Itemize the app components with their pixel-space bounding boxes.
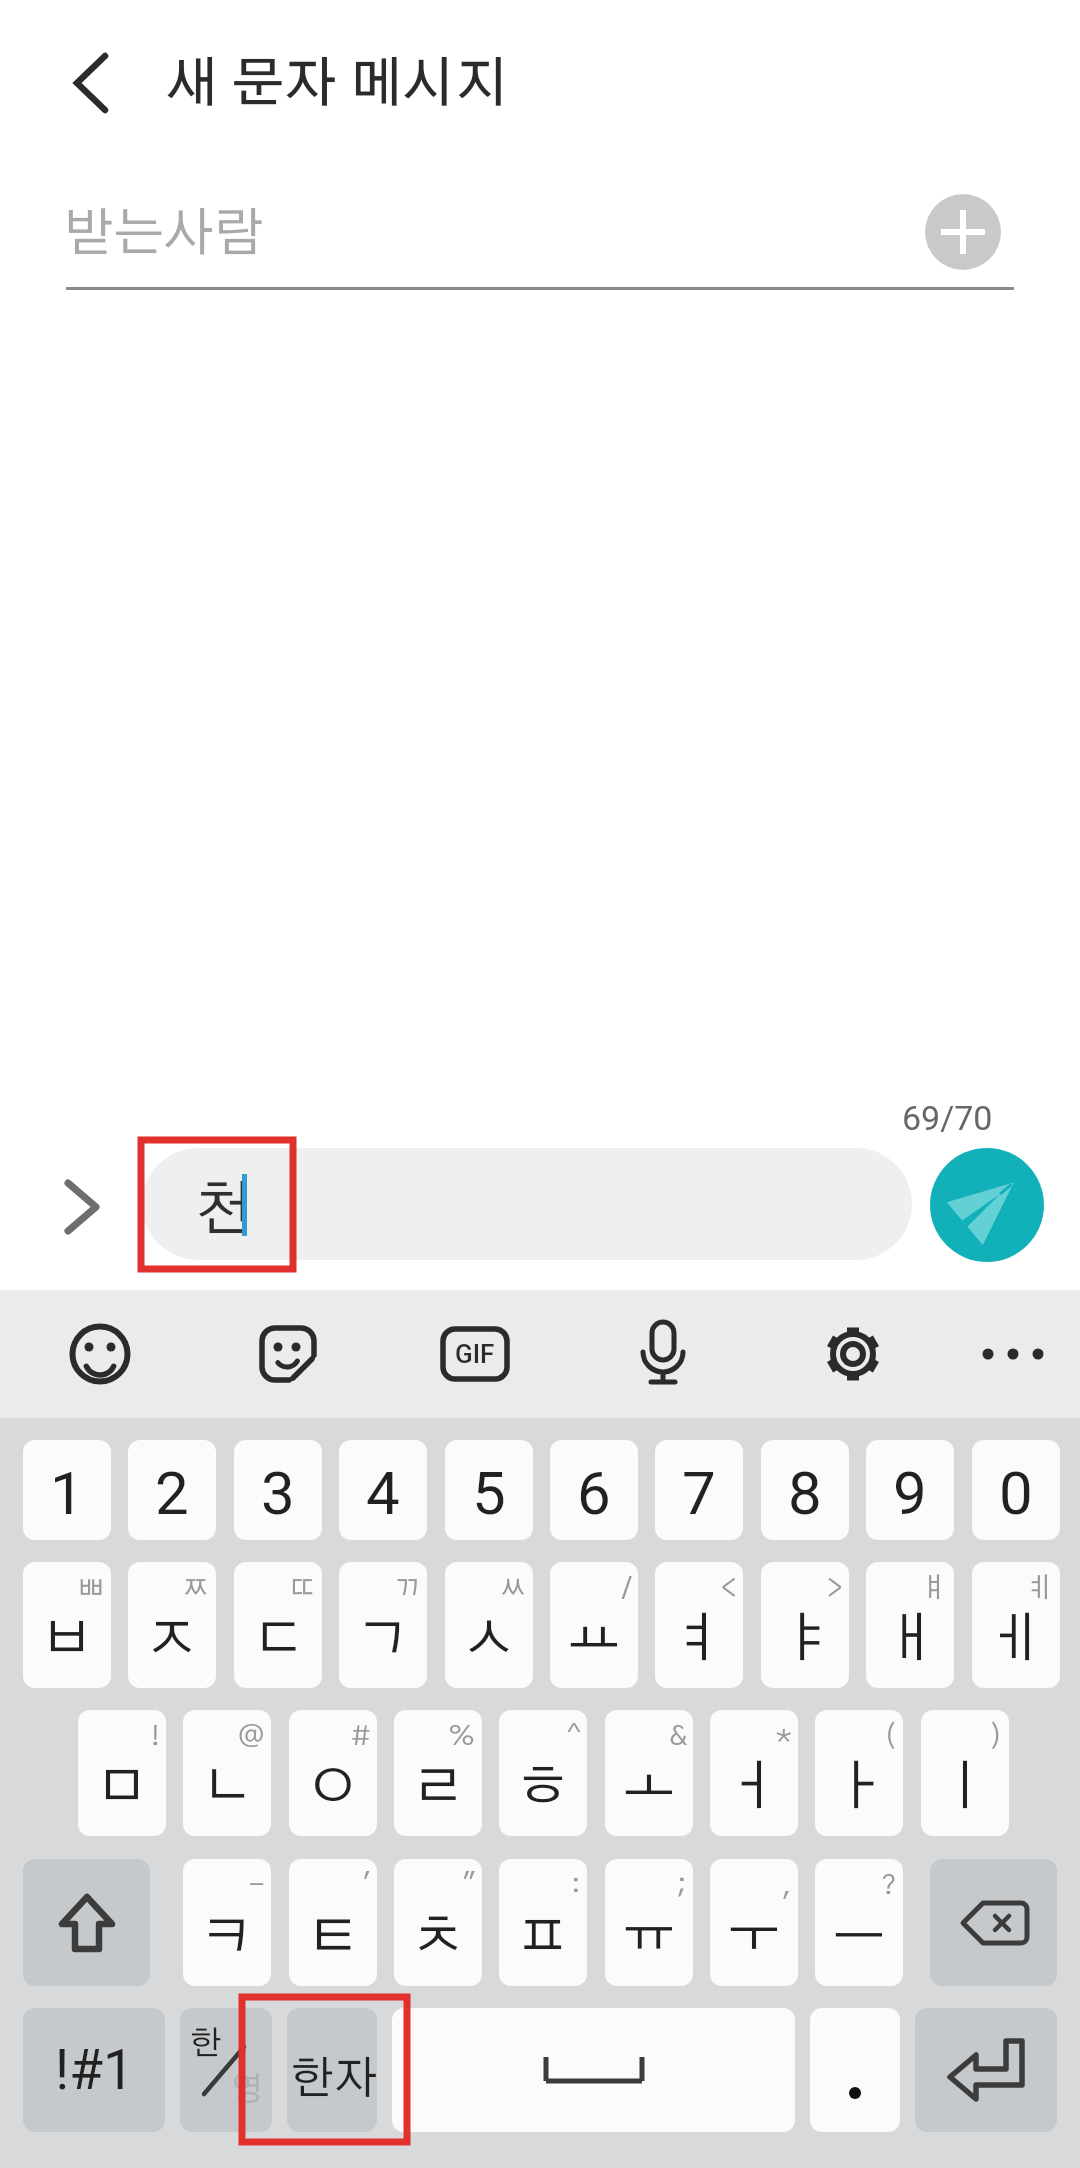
button[interactable]: ㅅ — [445, 1562, 533, 1688]
button[interactable] — [58, 1180, 114, 1236]
staticText: & — [669, 1723, 687, 1751]
button[interactable]: ㅂ — [23, 1562, 111, 1688]
button[interactable]: 4 — [339, 1440, 427, 1540]
button[interactable]: ㅗ — [605, 1710, 693, 1836]
button[interactable] — [930, 1859, 1057, 1986]
button[interactable]: ㅜ — [710, 1859, 798, 1986]
staticText: 1 — [50, 1458, 84, 1528]
button[interactable]: ㅐ — [866, 1562, 954, 1688]
staticText: ^ — [567, 1723, 581, 1751]
button[interactable]: ㅑ — [761, 1562, 849, 1688]
button[interactable]: 7 — [655, 1440, 743, 1540]
staticText: ㄸ — [288, 1575, 316, 1603]
button[interactable]: ㅠ — [605, 1859, 693, 1986]
button[interactable]: ㄷ — [234, 1562, 322, 1688]
staticText: 5 — [472, 1458, 506, 1528]
button[interactable]: ㅛ — [550, 1562, 638, 1688]
button[interactable] — [925, 194, 1001, 270]
button[interactable] — [623, 1314, 703, 1394]
staticText: 7 — [682, 1458, 716, 1528]
button[interactable] — [810, 2008, 900, 2132]
button[interactable]: 2 — [128, 1440, 216, 1540]
button[interactable]: ㅡ — [815, 1859, 903, 1986]
staticText: ㅍ — [516, 1911, 570, 1965]
staticText: ㄱ — [356, 1613, 410, 1667]
button[interactable] — [248, 1314, 328, 1394]
button[interactable]: ㅔ — [972, 1562, 1060, 1688]
button[interactable]: 한 — [180, 2008, 272, 2132]
staticText: ㅐ — [883, 1613, 937, 1667]
button[interactable]: ㅊ — [394, 1859, 482, 1986]
button[interactable] — [23, 1859, 150, 1986]
staticText: ( — [884, 1723, 897, 1751]
button[interactable]: ㄹ — [394, 1710, 482, 1836]
button[interactable]: GIF — [435, 1314, 515, 1394]
button[interactable] — [392, 2008, 795, 2132]
button[interactable]: 8 — [761, 1440, 849, 1540]
button[interactable] — [60, 1314, 140, 1394]
button[interactable] — [142, 1148, 912, 1260]
button[interactable]: ㅕ — [655, 1562, 743, 1688]
button[interactable]: 3 — [234, 1440, 322, 1540]
staticText: ㅕ — [672, 1613, 726, 1667]
staticText: ㅁ — [95, 1761, 149, 1815]
staticText: 한자 — [291, 2057, 377, 2102]
staticText: - — [249, 1872, 265, 1900]
button[interactable] — [813, 1314, 893, 1394]
staticText: ' — [362, 1872, 371, 1900]
staticText: ㅠ — [622, 1911, 676, 1965]
button[interactable] — [915, 2008, 1057, 2132]
staticText: 3 — [261, 1458, 295, 1528]
staticText: ) — [990, 1723, 1003, 1751]
button[interactable]: 6 — [550, 1440, 638, 1540]
button[interactable]: ㄱ — [339, 1562, 427, 1688]
staticText: ㄴ — [200, 1761, 254, 1815]
button[interactable]: ㅁ — [78, 1710, 166, 1836]
staticText: " — [462, 1872, 476, 1900]
button[interactable] — [60, 48, 130, 118]
staticText: * — [776, 1723, 792, 1751]
staticText: ㅜ — [727, 1911, 781, 1965]
button[interactable]: ㄴ — [183, 1710, 271, 1836]
staticText: ㅑ — [778, 1613, 832, 1667]
staticText: % — [448, 1723, 476, 1751]
staticText: ㅒ — [920, 1575, 948, 1603]
button[interactable]: 1 — [23, 1440, 111, 1540]
staticText: ; — [677, 1872, 687, 1900]
staticText: ㄲ — [393, 1575, 421, 1603]
staticText: @ — [238, 1723, 265, 1751]
button[interactable]: ㅇ — [289, 1710, 377, 1836]
staticText: ㅊ — [411, 1911, 465, 1965]
staticText: ㅏ — [832, 1761, 886, 1815]
button[interactable]: ㅣ — [921, 1710, 1009, 1836]
staticText: 한 — [190, 2028, 222, 2061]
button[interactable]: 0 — [972, 1440, 1060, 1540]
staticText: !#1 — [55, 2038, 134, 2102]
staticText: / — [622, 1575, 632, 1603]
staticText: ! — [151, 1723, 160, 1751]
button[interactable]: ㅏ — [815, 1710, 903, 1836]
staticText: ? — [881, 1872, 897, 1900]
button[interactable]: ㅍ — [499, 1859, 587, 1986]
staticText: ㅌ — [306, 1911, 360, 1965]
staticText: ㄹ — [411, 1761, 465, 1815]
button[interactable] — [930, 1148, 1044, 1262]
staticText: 새 문자 메시지 — [166, 58, 508, 112]
staticText: GIF — [455, 1339, 495, 1369]
button[interactable]: ㅓ — [710, 1710, 798, 1836]
staticText: ㄷ — [251, 1613, 305, 1667]
button[interactable]: ㅌ — [289, 1859, 377, 1986]
button[interactable] — [973, 1314, 1053, 1394]
button[interactable]: ㅎ — [499, 1710, 587, 1836]
button[interactable]: 한자 — [287, 2008, 377, 2132]
button[interactable]: !#1 — [23, 2008, 165, 2132]
staticText: ㅇ — [306, 1761, 360, 1815]
button[interactable]: ㅋ — [183, 1859, 271, 1986]
button[interactable]: 5 — [445, 1440, 533, 1540]
staticText: ㅣ — [938, 1761, 992, 1815]
button[interactable]: ㅈ — [128, 1562, 216, 1688]
button[interactable]: 9 — [866, 1440, 954, 1540]
staticText: ㅂ — [40, 1613, 94, 1667]
staticText: 2 — [155, 1458, 189, 1528]
staticText: 9 — [893, 1458, 927, 1528]
